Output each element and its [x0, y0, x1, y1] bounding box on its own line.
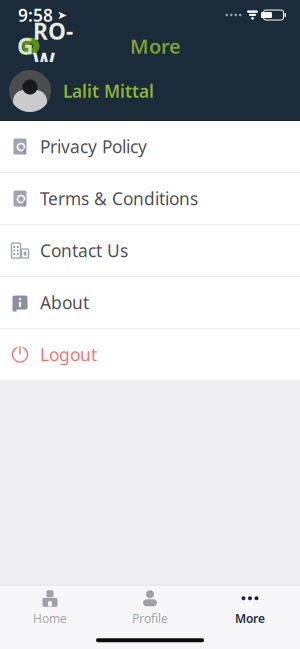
- button[interactable]: Logout: [0, 329, 300, 380]
- staticText: Contact Us: [40, 239, 128, 262]
- staticText: Terms & Conditions: [40, 187, 198, 210]
- staticText: ROW: [33, 16, 73, 76]
- staticText: Home: [33, 610, 67, 626]
- button[interactable]: Home: [0, 585, 100, 630]
- staticText: G: [17, 31, 33, 61]
- staticText: 9:58: [18, 3, 53, 26]
- button[interactable]: Contact Us: [0, 225, 300, 276]
- button[interactable]: Terms & Conditions: [0, 173, 300, 224]
- staticText: More: [235, 610, 265, 626]
- button[interactable]: Lalit Mittal: [0, 62, 300, 120]
- button[interactable]: More: [200, 585, 300, 630]
- staticText: ➤: [53, 8, 67, 22]
- staticText: Logout: [40, 343, 97, 366]
- staticText: Lalit Mittal: [63, 79, 154, 102]
- button[interactable]: Privacy Policy: [0, 121, 300, 172]
- staticText: More: [130, 33, 181, 59]
- staticText: Profile: [132, 610, 168, 626]
- button[interactable]: Profile: [100, 585, 200, 630]
- staticText: Privacy Policy: [40, 135, 147, 158]
- staticText: About: [40, 291, 89, 314]
- button[interactable]: About: [0, 277, 300, 328]
